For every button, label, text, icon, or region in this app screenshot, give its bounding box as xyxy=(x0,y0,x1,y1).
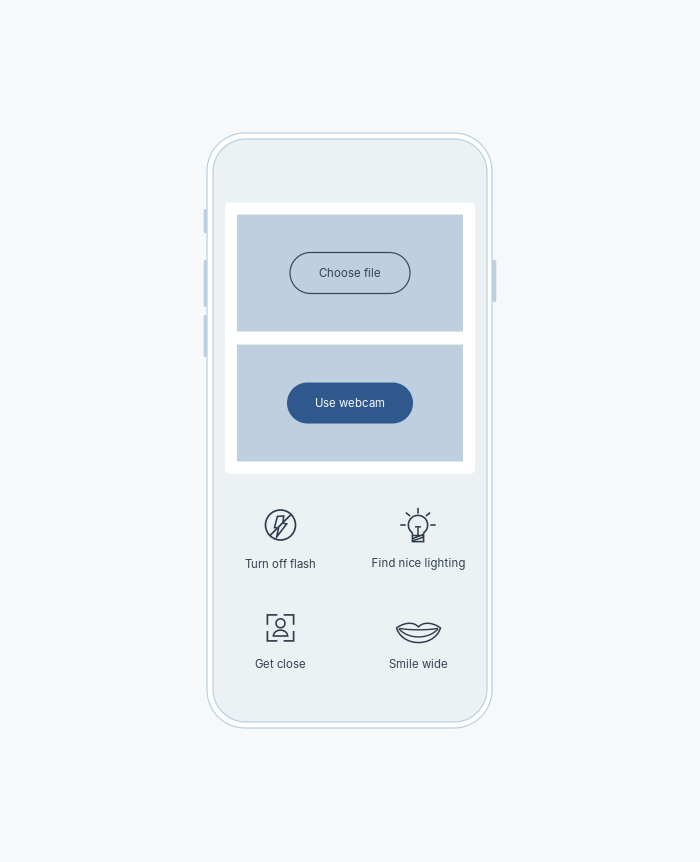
staticText: Find nice lighting xyxy=(371,556,465,570)
button[interactable]: Get close xyxy=(211,598,349,708)
button[interactable]: Use webcam xyxy=(287,382,413,423)
button[interactable]: Turn off flash xyxy=(211,495,349,605)
staticText: Turn off flash xyxy=(245,557,316,571)
button[interactable]: Choose file xyxy=(290,252,410,293)
staticText: Choose file xyxy=(319,266,381,280)
staticText: Get close xyxy=(255,657,306,671)
button[interactable]: Smile wide xyxy=(349,598,487,708)
staticText: Use webcam xyxy=(315,396,385,410)
button[interactable]: Find nice lighting xyxy=(349,495,487,605)
staticText: Smile wide xyxy=(389,657,448,671)
